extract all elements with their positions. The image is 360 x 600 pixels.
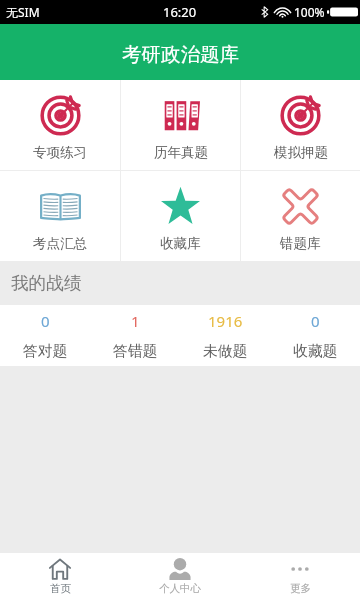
button[interactable]: 收藏库 xyxy=(121,171,240,261)
button[interactable]: 个人中心 xyxy=(120,553,240,600)
button[interactable]: 1 xyxy=(90,305,180,366)
staticText: 答错题 xyxy=(113,342,158,361)
staticText: 0 xyxy=(311,311,320,331)
staticText: 答对题 xyxy=(23,342,68,361)
staticText: 收藏题 xyxy=(293,342,338,361)
staticText: 我的战绩 xyxy=(11,272,82,294)
staticText: 无SIM xyxy=(6,4,40,20)
staticText: 个人中心 xyxy=(159,582,201,595)
staticText: 专项练习 xyxy=(33,144,87,161)
staticText: 未做题 xyxy=(203,342,248,361)
staticText: 模拟押题 xyxy=(274,144,328,161)
staticText: 考研政治题库 xyxy=(122,42,239,67)
staticText: 0 xyxy=(41,311,50,331)
button[interactable]: 错题库 xyxy=(241,171,360,261)
button[interactable]: 专项练习 xyxy=(0,80,120,170)
staticText: 100% xyxy=(294,4,325,20)
button[interactable]: 首页 xyxy=(0,553,120,600)
staticText: 收藏库 xyxy=(160,235,201,252)
button[interactable]: 0 xyxy=(270,305,360,366)
staticText: 历年真题 xyxy=(154,144,208,161)
button[interactable]: 模拟押题 xyxy=(241,80,360,170)
staticText: 首页 xyxy=(50,582,71,595)
button[interactable]: 历年真题 xyxy=(121,80,240,170)
staticText: 16:20 xyxy=(163,3,197,21)
staticText: 1 xyxy=(131,311,140,331)
staticText: 考点汇总 xyxy=(33,235,87,252)
staticText: 错题库 xyxy=(280,235,321,252)
button[interactable]: 1916 xyxy=(180,305,270,366)
button[interactable]: 考点汇总 xyxy=(0,171,120,261)
button[interactable]: 0 xyxy=(0,305,90,366)
staticText: 更多 xyxy=(290,582,311,595)
staticText: 1916 xyxy=(208,311,243,331)
button[interactable]: 更多 xyxy=(240,553,360,600)
